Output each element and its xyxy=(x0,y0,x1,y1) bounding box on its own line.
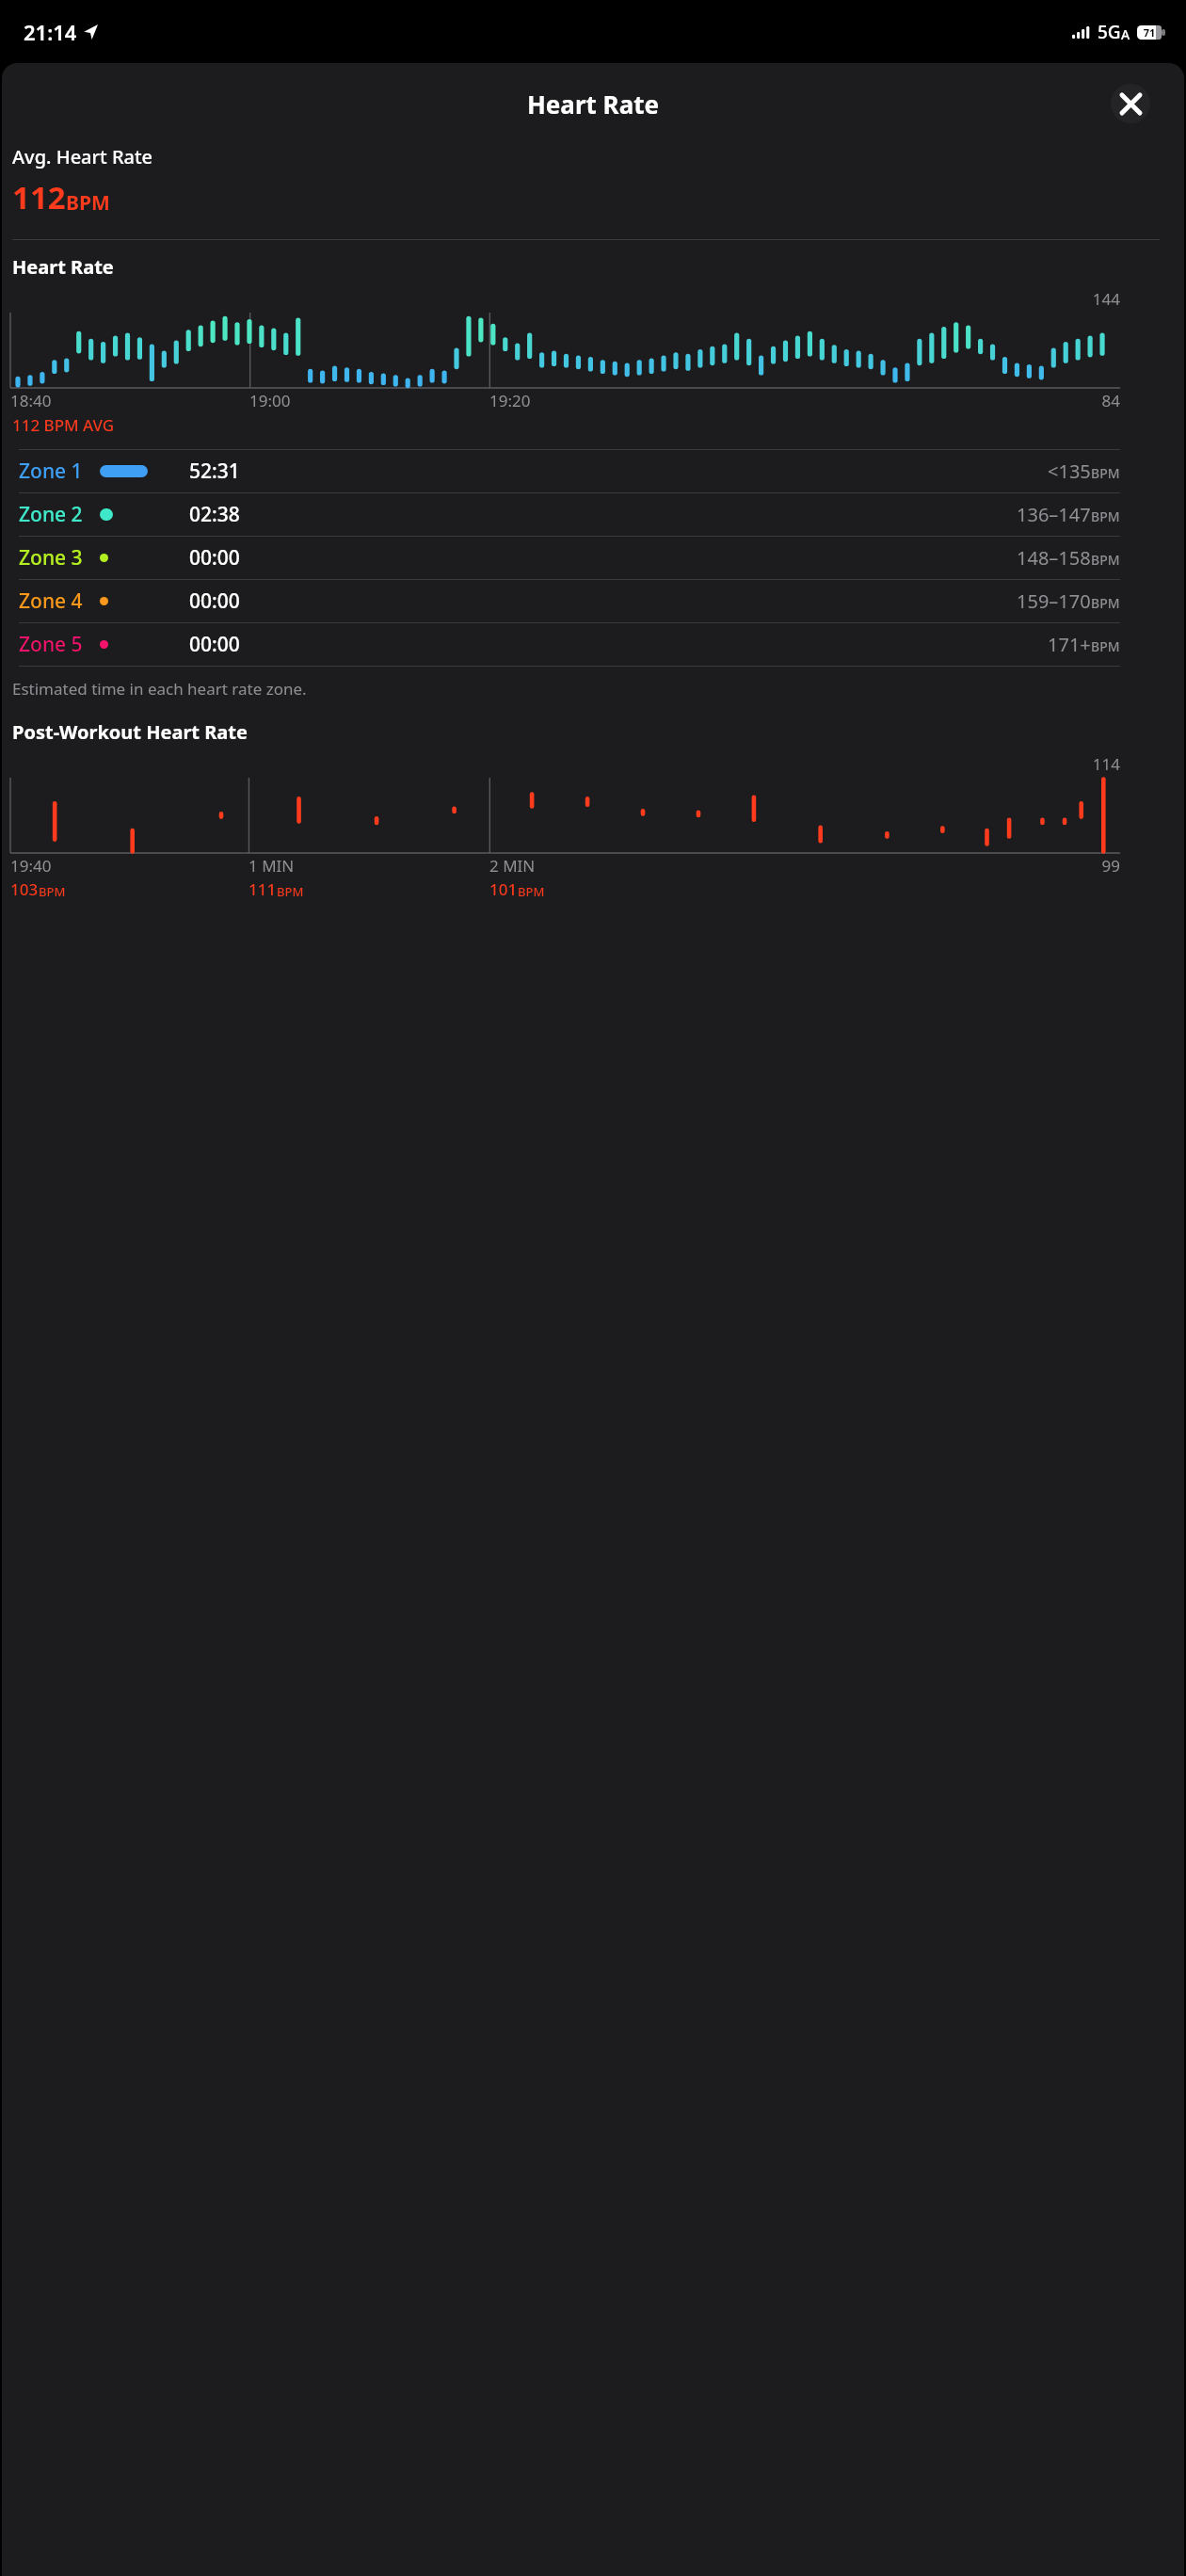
staticText: 159–170 xyxy=(1017,588,1091,614)
staticText: BPM xyxy=(277,883,304,900)
staticText: Heart Rate xyxy=(12,254,114,280)
staticText: 84 xyxy=(878,390,1120,411)
staticText: BPM xyxy=(1091,507,1120,525)
staticText: 21:14 xyxy=(24,18,77,46)
staticText: A xyxy=(1121,25,1130,43)
staticText: 114 xyxy=(2,753,1120,775)
staticText: 99 xyxy=(878,855,1120,877)
staticText: 144 xyxy=(2,288,1120,310)
staticText: 00:00 xyxy=(189,544,1017,572)
staticText: 148–158 xyxy=(1017,545,1091,571)
staticText: 112 xyxy=(12,176,66,218)
button[interactable]: Zone 4 xyxy=(19,580,1120,622)
staticText: 19:00 xyxy=(249,390,489,411)
staticText: 1 MIN xyxy=(248,855,489,877)
staticText: 19:40 xyxy=(10,855,248,877)
staticText: 101 xyxy=(489,878,518,900)
button[interactable]: Zone 3 xyxy=(19,537,1120,579)
staticText: BPM xyxy=(518,883,545,900)
staticText: 00:00 xyxy=(189,588,1017,615)
staticText: BPM xyxy=(39,883,66,900)
staticText: Zone 3 xyxy=(19,544,100,572)
staticText: <135 xyxy=(1048,459,1091,484)
staticText: 103 xyxy=(10,878,39,900)
staticText: 5G xyxy=(1098,20,1121,44)
button[interactable]: Zone 2 xyxy=(19,493,1120,536)
staticText: Heart Rate xyxy=(2,88,1184,121)
staticText: 52:31 xyxy=(189,458,1048,485)
staticText: BPM xyxy=(1091,464,1120,482)
staticText: 18:40 xyxy=(10,390,249,411)
staticText: 02:38 xyxy=(189,501,1017,528)
staticText: 00:00 xyxy=(189,631,1048,658)
staticText: BPM xyxy=(66,189,110,217)
staticText: 112 BPM AVG xyxy=(12,414,115,436)
staticText: Estimated time in each heart rate zone. xyxy=(12,678,307,700)
staticText: Post-Workout Heart Rate xyxy=(12,719,248,745)
button[interactable]: Zone 5 xyxy=(19,623,1120,666)
staticText: 71 xyxy=(1137,25,1162,40)
staticText: 136–147 xyxy=(1017,502,1091,527)
button[interactable]: Zone 1 xyxy=(19,450,1120,492)
staticText: 111 xyxy=(248,878,277,900)
button[interactable]: Close xyxy=(1111,84,1150,123)
staticText: BPM xyxy=(1091,637,1120,655)
staticText: Zone 2 xyxy=(19,501,100,528)
staticText: Zone 4 xyxy=(19,588,100,615)
staticText: Zone 1 xyxy=(19,458,100,485)
staticText: BPM xyxy=(1091,551,1120,569)
staticText: 2 MIN xyxy=(489,855,878,877)
staticText: 171+ xyxy=(1048,632,1091,657)
staticText: Zone 5 xyxy=(19,631,100,658)
staticText: Avg. Heart Rate xyxy=(12,144,153,169)
staticText: 19:20 xyxy=(489,390,878,411)
staticText: BPM xyxy=(1091,594,1120,612)
